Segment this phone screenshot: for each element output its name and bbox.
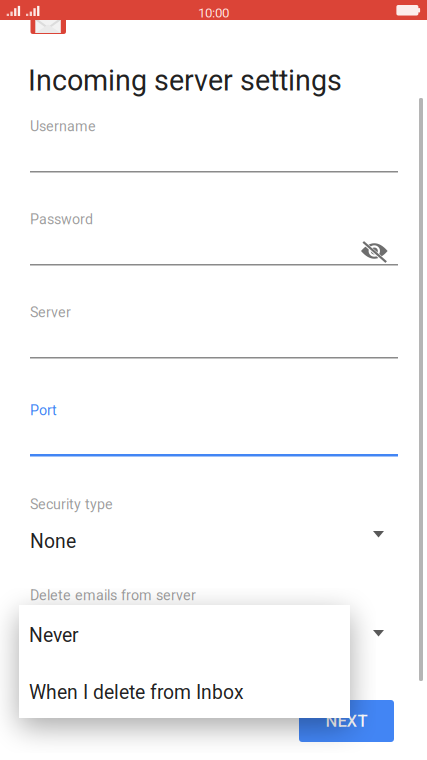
staticText: None: [30, 530, 76, 553]
button[interactable]: Port: [30, 398, 398, 460]
button[interactable]: Password: [30, 207, 398, 270]
button[interactable]: Security type: [30, 493, 398, 555]
staticText: Incoming server settings: [28, 64, 342, 98]
staticText: Server: [30, 304, 71, 321]
button[interactable]: NEXT: [299, 700, 394, 742]
button[interactable]: Username: [30, 114, 398, 177]
staticText: Port: [30, 402, 57, 419]
staticText: Security type: [30, 496, 113, 513]
staticText: NEXT: [325, 711, 367, 731]
button[interactable]: Delete emails from server: [30, 584, 398, 646]
staticText: When I delete from Inbox: [29, 681, 244, 704]
staticText: 10:00: [198, 5, 229, 21]
button[interactable]: When I delete from Inbox: [19, 661, 350, 718]
staticText: Delete emails from server: [30, 587, 196, 604]
button[interactable]: Server: [30, 300, 398, 363]
staticText: Never: [29, 624, 79, 647]
staticText: Username: [30, 118, 96, 135]
button[interactable]: Never: [19, 605, 350, 661]
staticText: Password: [30, 211, 93, 228]
